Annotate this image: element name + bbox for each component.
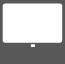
- button[interactable]: Display panel: [0, 0, 65, 64]
